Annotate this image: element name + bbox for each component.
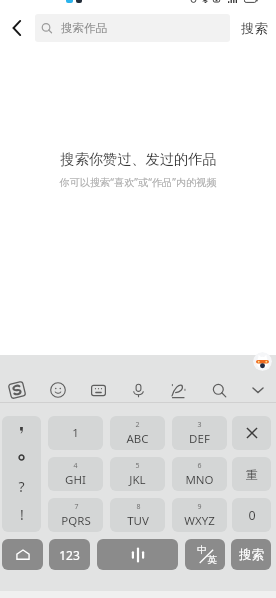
staticText: 123: [59, 547, 80, 563]
button[interactable]: 7: [48, 498, 103, 532]
button[interactable]: 8: [110, 498, 165, 532]
button[interactable]: 5: [110, 457, 165, 491]
staticText: 重: [246, 467, 258, 482]
button[interactable]: Voice input: [125, 379, 151, 401]
button[interactable]: 4: [48, 457, 103, 491]
button[interactable]: 1: [48, 416, 103, 450]
staticText: WXYZ: [184, 513, 215, 529]
staticText: 搜索: [239, 547, 264, 563]
staticText: PQRS: [61, 513, 91, 529]
button[interactable]: Sogou input method: [4, 379, 30, 401]
button[interactable]: 搜索: [232, 14, 276, 42]
staticText: 搜索: [241, 20, 268, 37]
button[interactable]: 3: [172, 416, 227, 450]
staticText: DEF: [189, 431, 210, 447]
button[interactable]: 搜索作品: [35, 14, 230, 42]
button[interactable]: Handwriting: [165, 379, 191, 401]
button[interactable]: Home: [2, 539, 43, 570]
staticText: 9: [197, 502, 202, 512]
button[interactable]: 6: [172, 457, 227, 491]
staticText: 中: [197, 544, 207, 556]
button[interactable]: Back: [0, 14, 34, 42]
staticText: 6: [197, 461, 202, 471]
staticText: 搜索你赞过、发过的作品: [60, 150, 217, 168]
staticText: 搜索作品: [61, 21, 108, 36]
staticText: MNO: [185, 472, 214, 488]
button[interactable]: Delete: [232, 416, 271, 450]
staticText: 3: [197, 420, 202, 430]
button[interactable]: Keyboard layout: [85, 379, 111, 401]
staticText: 你可以搜索“喜欢”或“作品”内的视频: [59, 175, 217, 189]
staticText: 英: [207, 554, 217, 566]
staticText: !: [20, 505, 24, 523]
staticText: 2: [135, 420, 140, 430]
button[interactable]: 9: [172, 498, 227, 532]
staticText: JKL: [129, 472, 146, 488]
button[interactable]: Emoji: [45, 379, 71, 401]
button[interactable]: Space: [97, 539, 178, 570]
staticText: 4: [73, 461, 78, 471]
staticText: 1: [72, 425, 79, 441]
button[interactable]: ?: [2, 416, 41, 532]
button[interactable]: 0: [232, 498, 271, 532]
button[interactable]: 重: [232, 457, 271, 491]
button[interactable]: Numbers: [49, 539, 90, 570]
button[interactable]: Chinese English toggle: [185, 539, 225, 570]
staticText: 5: [135, 461, 140, 471]
staticText: 0: [248, 507, 256, 524]
staticText: 8: [136, 502, 141, 512]
staticText: 7: [74, 502, 79, 512]
button[interactable]: 搜索: [231, 539, 271, 570]
staticText: ?: [18, 477, 25, 495]
button[interactable]: Assistant: [253, 352, 272, 371]
staticText: GHI: [65, 472, 86, 488]
button[interactable]: 2: [110, 416, 165, 450]
button[interactable]: Search: [206, 379, 232, 401]
staticText: TUV: [127, 513, 149, 529]
staticText: ABC: [126, 431, 149, 447]
button[interactable]: Hide keyboard: [245, 379, 271, 401]
